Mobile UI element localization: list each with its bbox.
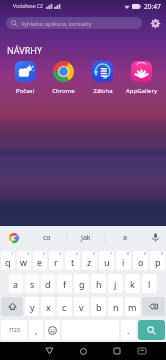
button[interactable]: p xyxy=(150,251,165,270)
staticText: Záloha xyxy=(93,87,113,95)
staticText: q xyxy=(5,256,11,268)
staticText: 3 xyxy=(43,251,46,256)
button[interactable]: x xyxy=(41,297,55,316)
staticText: a xyxy=(13,278,19,290)
staticText: Počasí xyxy=(16,87,34,95)
button[interactable]: AppGallery xyxy=(122,61,161,95)
staticText: e xyxy=(37,256,43,268)
staticText: t xyxy=(71,256,75,268)
button[interactable]: j xyxy=(108,274,123,293)
staticText: co xyxy=(43,233,51,243)
button[interactable]: Záloha xyxy=(83,61,122,95)
button[interactable]: Shift xyxy=(1,297,23,316)
button[interactable]: f xyxy=(57,274,72,293)
staticText: 0 xyxy=(161,251,164,256)
staticText: p xyxy=(155,256,161,268)
button[interactable]: i xyxy=(116,251,131,270)
button[interactable]: m xyxy=(125,297,140,316)
button[interactable]: ?123 xyxy=(1,320,27,340)
staticText: 1 xyxy=(11,251,14,256)
button[interactable]: h xyxy=(91,274,106,293)
staticText: 8 xyxy=(127,251,130,256)
button[interactable]: b xyxy=(91,297,106,316)
button[interactable]: Google xyxy=(0,226,28,249)
button[interactable]: co xyxy=(28,226,66,249)
button[interactable]: Jak xyxy=(67,226,105,249)
button[interactable]: , xyxy=(29,320,43,340)
staticText: 20:47 xyxy=(144,2,161,11)
staticText: k xyxy=(130,278,135,290)
staticText: Vodafone CZ xyxy=(13,3,43,10)
staticText: u xyxy=(104,256,110,268)
staticText: a xyxy=(123,233,127,243)
staticText: j xyxy=(114,278,117,290)
staticText: Jak xyxy=(81,233,91,243)
button[interactable]: Hide keyboard xyxy=(133,342,151,360)
button[interactable]: Backspace xyxy=(142,297,165,316)
staticText: 6 xyxy=(93,251,96,256)
button[interactable]: r xyxy=(49,251,63,270)
button[interactable]: z xyxy=(82,251,97,270)
staticText: 5 xyxy=(76,251,79,256)
staticText: f xyxy=(63,278,67,290)
button[interactable]: e xyxy=(33,251,47,270)
button[interactable]: Home xyxy=(74,342,92,360)
staticText: v xyxy=(79,301,84,313)
button[interactable]: Settings xyxy=(147,15,163,31)
staticText: g xyxy=(79,278,85,290)
button[interactable]: Počasí xyxy=(6,61,44,95)
button[interactable]: y xyxy=(25,297,39,316)
button[interactable]: w xyxy=(17,251,31,270)
button[interactable]: d xyxy=(41,274,55,293)
staticText: b xyxy=(96,301,102,313)
staticText: m xyxy=(128,301,137,313)
button[interactable]: o xyxy=(133,251,148,270)
button[interactable]: g xyxy=(74,274,89,293)
staticText: z xyxy=(87,256,92,268)
staticText: AppGallery xyxy=(126,87,157,95)
button[interactable]: q xyxy=(1,251,15,270)
staticText: l xyxy=(148,278,151,290)
staticText: y xyxy=(30,301,35,313)
staticText: h xyxy=(96,278,102,290)
button[interactable]: a xyxy=(106,226,144,249)
staticText: s xyxy=(30,278,35,290)
button[interactable]: k xyxy=(125,274,140,293)
button[interactable]: t xyxy=(65,251,80,270)
staticText: c xyxy=(62,301,67,313)
button[interactable]: Chrome xyxy=(44,61,83,95)
staticText: Chrome xyxy=(52,87,75,95)
staticText: ?123 xyxy=(9,327,20,334)
button[interactable]: Recents xyxy=(108,342,126,360)
staticText: , xyxy=(35,324,38,336)
button[interactable]: a xyxy=(9,274,23,293)
staticText: 9 xyxy=(144,251,147,256)
button[interactable]: s xyxy=(25,274,39,293)
button[interactable]: Vyhledat aplikace, kontakty xyxy=(6,17,142,29)
staticText: w xyxy=(20,256,28,268)
staticText: x xyxy=(46,301,51,313)
staticText: 4 xyxy=(59,251,62,256)
staticText: 2 xyxy=(27,251,30,256)
button[interactable]: Search xyxy=(138,320,165,340)
button[interactable]: v xyxy=(74,297,89,316)
staticText: Vyhledat aplikace, kontakty xyxy=(21,20,92,27)
staticText: 7 xyxy=(110,251,113,256)
button[interactable]: c xyxy=(57,297,72,316)
button[interactable]: u xyxy=(99,251,114,270)
button[interactable]: n xyxy=(108,297,123,316)
button[interactable]: Emoji xyxy=(45,320,60,340)
button[interactable]: Voice input xyxy=(144,226,166,249)
staticText: o xyxy=(138,256,144,268)
staticText: NÁVRHY xyxy=(7,44,42,56)
button[interactable]: l xyxy=(142,274,157,293)
button[interactable]: . xyxy=(121,320,136,340)
staticText: d xyxy=(45,278,51,290)
button[interactable]: Back xyxy=(40,342,58,360)
staticText: n xyxy=(113,301,119,313)
staticText: i xyxy=(122,256,125,268)
staticText: r xyxy=(54,256,58,268)
staticText: . xyxy=(127,324,130,336)
